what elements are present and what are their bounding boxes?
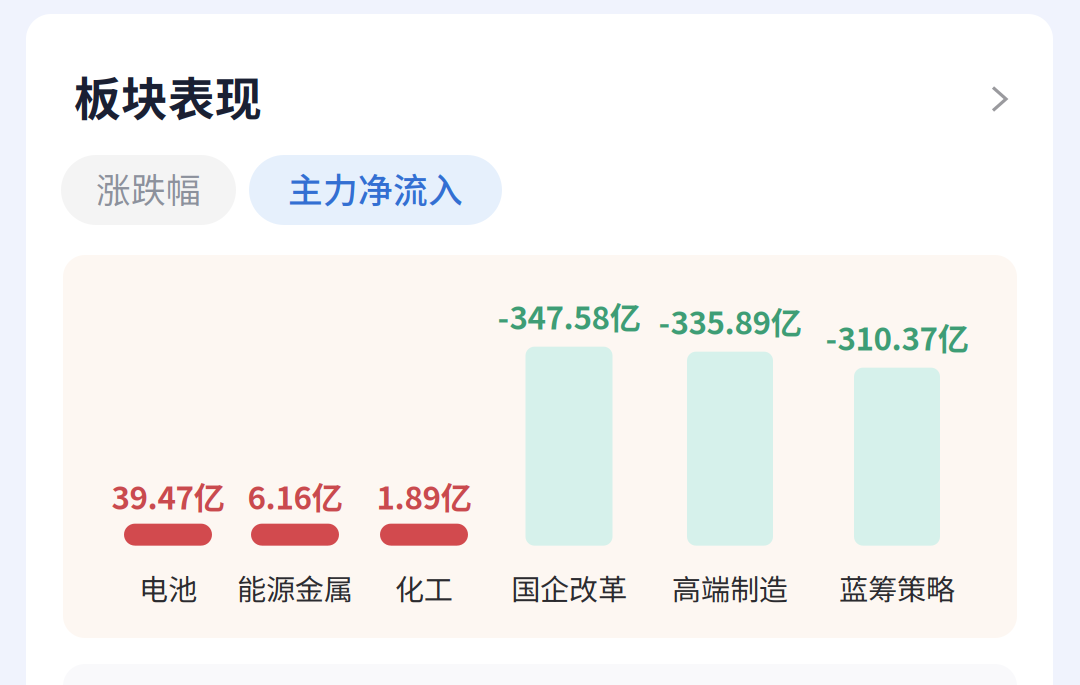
button[interactable]: 板块表现，查看全部 bbox=[74, 48, 1009, 144]
staticText: 电池 bbox=[139, 567, 197, 609]
staticText: -335.89亿 bbox=[658, 298, 801, 344]
staticText: 蓝筹策略 bbox=[839, 567, 955, 609]
staticText: 涨跌幅 bbox=[96, 163, 201, 213]
staticText: 主力净流入 bbox=[288, 163, 463, 213]
staticText: -347.58亿 bbox=[497, 293, 640, 339]
staticText: 国企改革 bbox=[511, 567, 627, 609]
button[interactable]: 电池 主力净流入 39.47亿 bbox=[93, 473, 243, 609]
staticText: 6.16亿 bbox=[247, 473, 342, 519]
staticText: -310.37亿 bbox=[825, 314, 968, 360]
staticText: 39.47亿 bbox=[111, 473, 224, 519]
staticText: 能源金属 bbox=[237, 567, 353, 609]
button[interactable]: 国企改革 主力净流入 -347.58亿 bbox=[494, 293, 644, 609]
staticText: 1.89亿 bbox=[376, 473, 471, 519]
button[interactable]: 化工 主力净流入 1.89亿 bbox=[349, 473, 499, 609]
staticText: 板块表现 bbox=[74, 62, 262, 130]
button[interactable]: 涨跌幅 bbox=[61, 155, 236, 225]
button[interactable]: 蓝筹策略 主力净流入 -310.37亿 bbox=[822, 314, 972, 609]
button[interactable]: 主力净流入 bbox=[249, 155, 502, 225]
staticText: 高端制造 bbox=[672, 567, 788, 609]
button[interactable]: 能源金属 主力净流入 6.16亿 bbox=[220, 473, 370, 609]
button[interactable]: 高端制造 主力净流入 -335.89亿 bbox=[655, 298, 805, 609]
staticText: 化工 bbox=[395, 567, 453, 609]
